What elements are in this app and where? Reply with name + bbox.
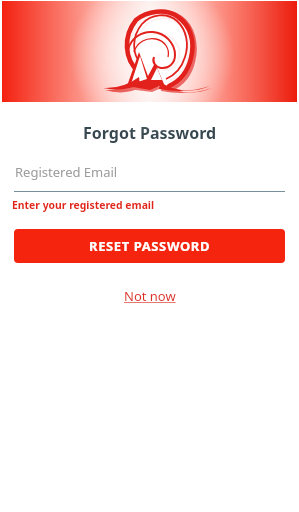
staticText: Enter your registered email [12, 198, 155, 212]
button[interactable]: RESET PASSWORD [14, 229, 285, 263]
staticText: Not now [124, 287, 176, 305]
staticText: RESET PASSWORD [89, 237, 211, 255]
staticText: Registered Email [15, 163, 118, 181]
button[interactable]: Not now [120, 283, 180, 309]
staticText: Forgot Password [83, 122, 217, 144]
